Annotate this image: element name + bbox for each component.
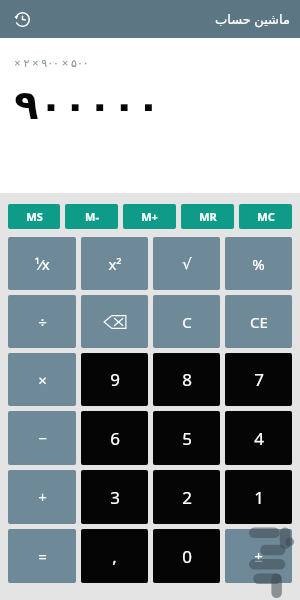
- staticText: ماشین حساب: [215, 10, 290, 28]
- staticText: 6: [110, 427, 120, 450]
- staticText: ,: [112, 545, 117, 568]
- button[interactable]: −: [8, 411, 76, 465]
- button[interactable]: √: [153, 237, 220, 290]
- button[interactable]: C: [153, 295, 220, 348]
- button[interactable]: MR: [181, 204, 234, 229]
- button[interactable]: 9: [81, 353, 148, 406]
- staticText: √: [182, 255, 192, 272]
- button[interactable]: 2: [153, 470, 220, 524]
- staticText: 3: [110, 486, 120, 509]
- button[interactable]: +: [8, 470, 76, 524]
- button[interactable]: 6: [81, 411, 148, 465]
- button[interactable]: History: [6, 3, 38, 35]
- staticText: ÷: [38, 312, 47, 332]
- button[interactable]: ,: [81, 529, 148, 583]
- button[interactable]: 4: [225, 411, 292, 465]
- staticText: 5: [182, 427, 192, 450]
- staticText: 1: [254, 486, 264, 509]
- staticText: C: [182, 312, 192, 332]
- staticText: ¹⁄x: [34, 254, 50, 274]
- staticText: +: [38, 487, 47, 507]
- staticText: ۹۰۰۰۰۰: [14, 82, 161, 129]
- button[interactable]: 5: [153, 411, 220, 465]
- staticText: −: [38, 428, 47, 448]
- button[interactable]: M-: [65, 204, 118, 229]
- button[interactable]: ÷: [8, 295, 76, 348]
- button[interactable]: 0: [153, 529, 220, 583]
- staticText: 9: [110, 368, 120, 391]
- staticText: MS: [26, 209, 43, 224]
- button[interactable]: ±: [225, 529, 292, 583]
- button[interactable]: 8: [153, 353, 220, 406]
- staticText: ±: [254, 546, 263, 566]
- staticText: x²: [108, 254, 122, 274]
- staticText: =: [38, 546, 47, 566]
- button[interactable]: MC: [239, 204, 292, 229]
- button[interactable]: =: [8, 529, 76, 583]
- staticText: MR: [199, 209, 217, 224]
- staticText: 0: [182, 545, 192, 568]
- button[interactable]: %: [225, 237, 292, 290]
- staticText: 7: [254, 368, 264, 391]
- staticText: M+: [141, 209, 158, 224]
- staticText: 2: [182, 486, 192, 509]
- button[interactable]: 3: [81, 470, 148, 524]
- staticText: MC: [257, 209, 275, 224]
- staticText: 8: [182, 368, 192, 391]
- staticText: CE: [250, 312, 268, 332]
- staticText: M-: [85, 209, 99, 224]
- button[interactable]: ×: [8, 353, 76, 406]
- button[interactable]: CE: [225, 295, 292, 348]
- button[interactable]: x²: [81, 237, 148, 290]
- button[interactable]: Backspace: [81, 295, 148, 348]
- button[interactable]: 7: [225, 353, 292, 406]
- staticText: × ۲ × ۹۰۰ × ۵۰۰: [14, 55, 89, 70]
- button[interactable]: ¹⁄x: [8, 237, 76, 290]
- staticText: ×: [38, 370, 47, 390]
- staticText: 4: [254, 427, 264, 450]
- button[interactable]: M+: [123, 204, 176, 229]
- button[interactable]: 1: [225, 470, 292, 524]
- button[interactable]: MS: [8, 204, 60, 229]
- staticText: %: [252, 254, 265, 274]
